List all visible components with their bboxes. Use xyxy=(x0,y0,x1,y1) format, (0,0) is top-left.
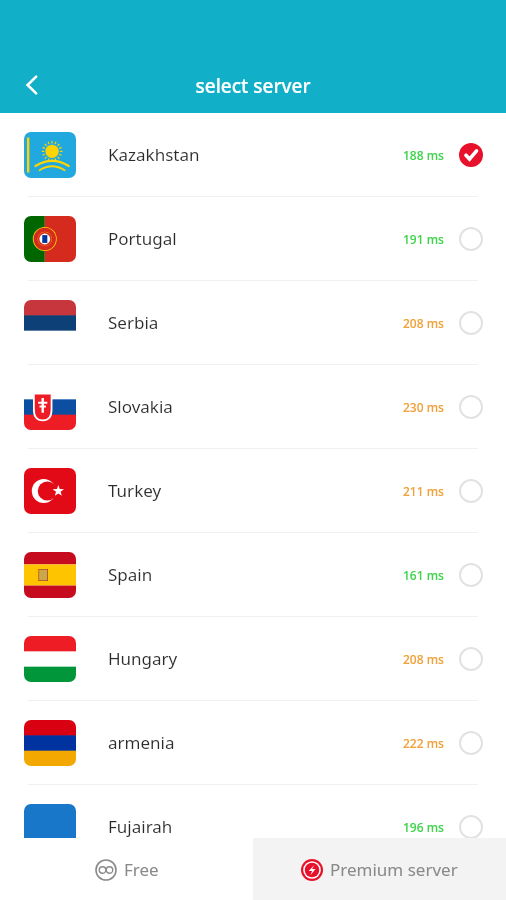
staticText: Free xyxy=(124,858,159,881)
staticText: Slovakia xyxy=(108,395,173,418)
staticText: 161 ms xyxy=(403,567,444,583)
staticText: 191 ms xyxy=(403,231,444,247)
staticText: select server xyxy=(0,73,506,99)
staticText: 230 ms xyxy=(403,399,444,415)
button[interactable]: Free xyxy=(0,838,253,900)
staticText: Spain xyxy=(108,563,153,586)
button[interactable]: Hungary xyxy=(0,617,506,700)
staticText: Turkey xyxy=(108,479,162,502)
staticText: 188 ms xyxy=(403,147,444,163)
staticText: Kazakhstan xyxy=(108,143,200,166)
button[interactable]: Back xyxy=(4,57,60,113)
staticText: 222 ms xyxy=(403,735,444,751)
button[interactable]: Premium server xyxy=(253,838,506,900)
button[interactable]: Kazakhstan xyxy=(0,113,506,196)
staticText: 196 ms xyxy=(403,819,444,835)
staticText: Premium server xyxy=(330,858,458,881)
staticText: 211 ms xyxy=(403,483,444,499)
staticText: Serbia xyxy=(108,311,159,334)
button[interactable]: Fujairah xyxy=(0,785,506,868)
staticText: 208 ms xyxy=(403,315,444,331)
staticText: Hungary xyxy=(108,647,178,670)
button[interactable]: Turkey xyxy=(0,449,506,532)
button[interactable]: Serbia xyxy=(0,281,506,364)
button[interactable]: Slovakia xyxy=(0,365,506,448)
staticText: Fujairah xyxy=(108,815,173,838)
button[interactable]: armenia xyxy=(0,701,506,784)
staticText: 208 ms xyxy=(403,651,444,667)
button[interactable]: Portugal xyxy=(0,197,506,280)
button[interactable]: Spain xyxy=(0,533,506,616)
staticText: Portugal xyxy=(108,227,177,250)
staticText: armenia xyxy=(108,731,175,754)
